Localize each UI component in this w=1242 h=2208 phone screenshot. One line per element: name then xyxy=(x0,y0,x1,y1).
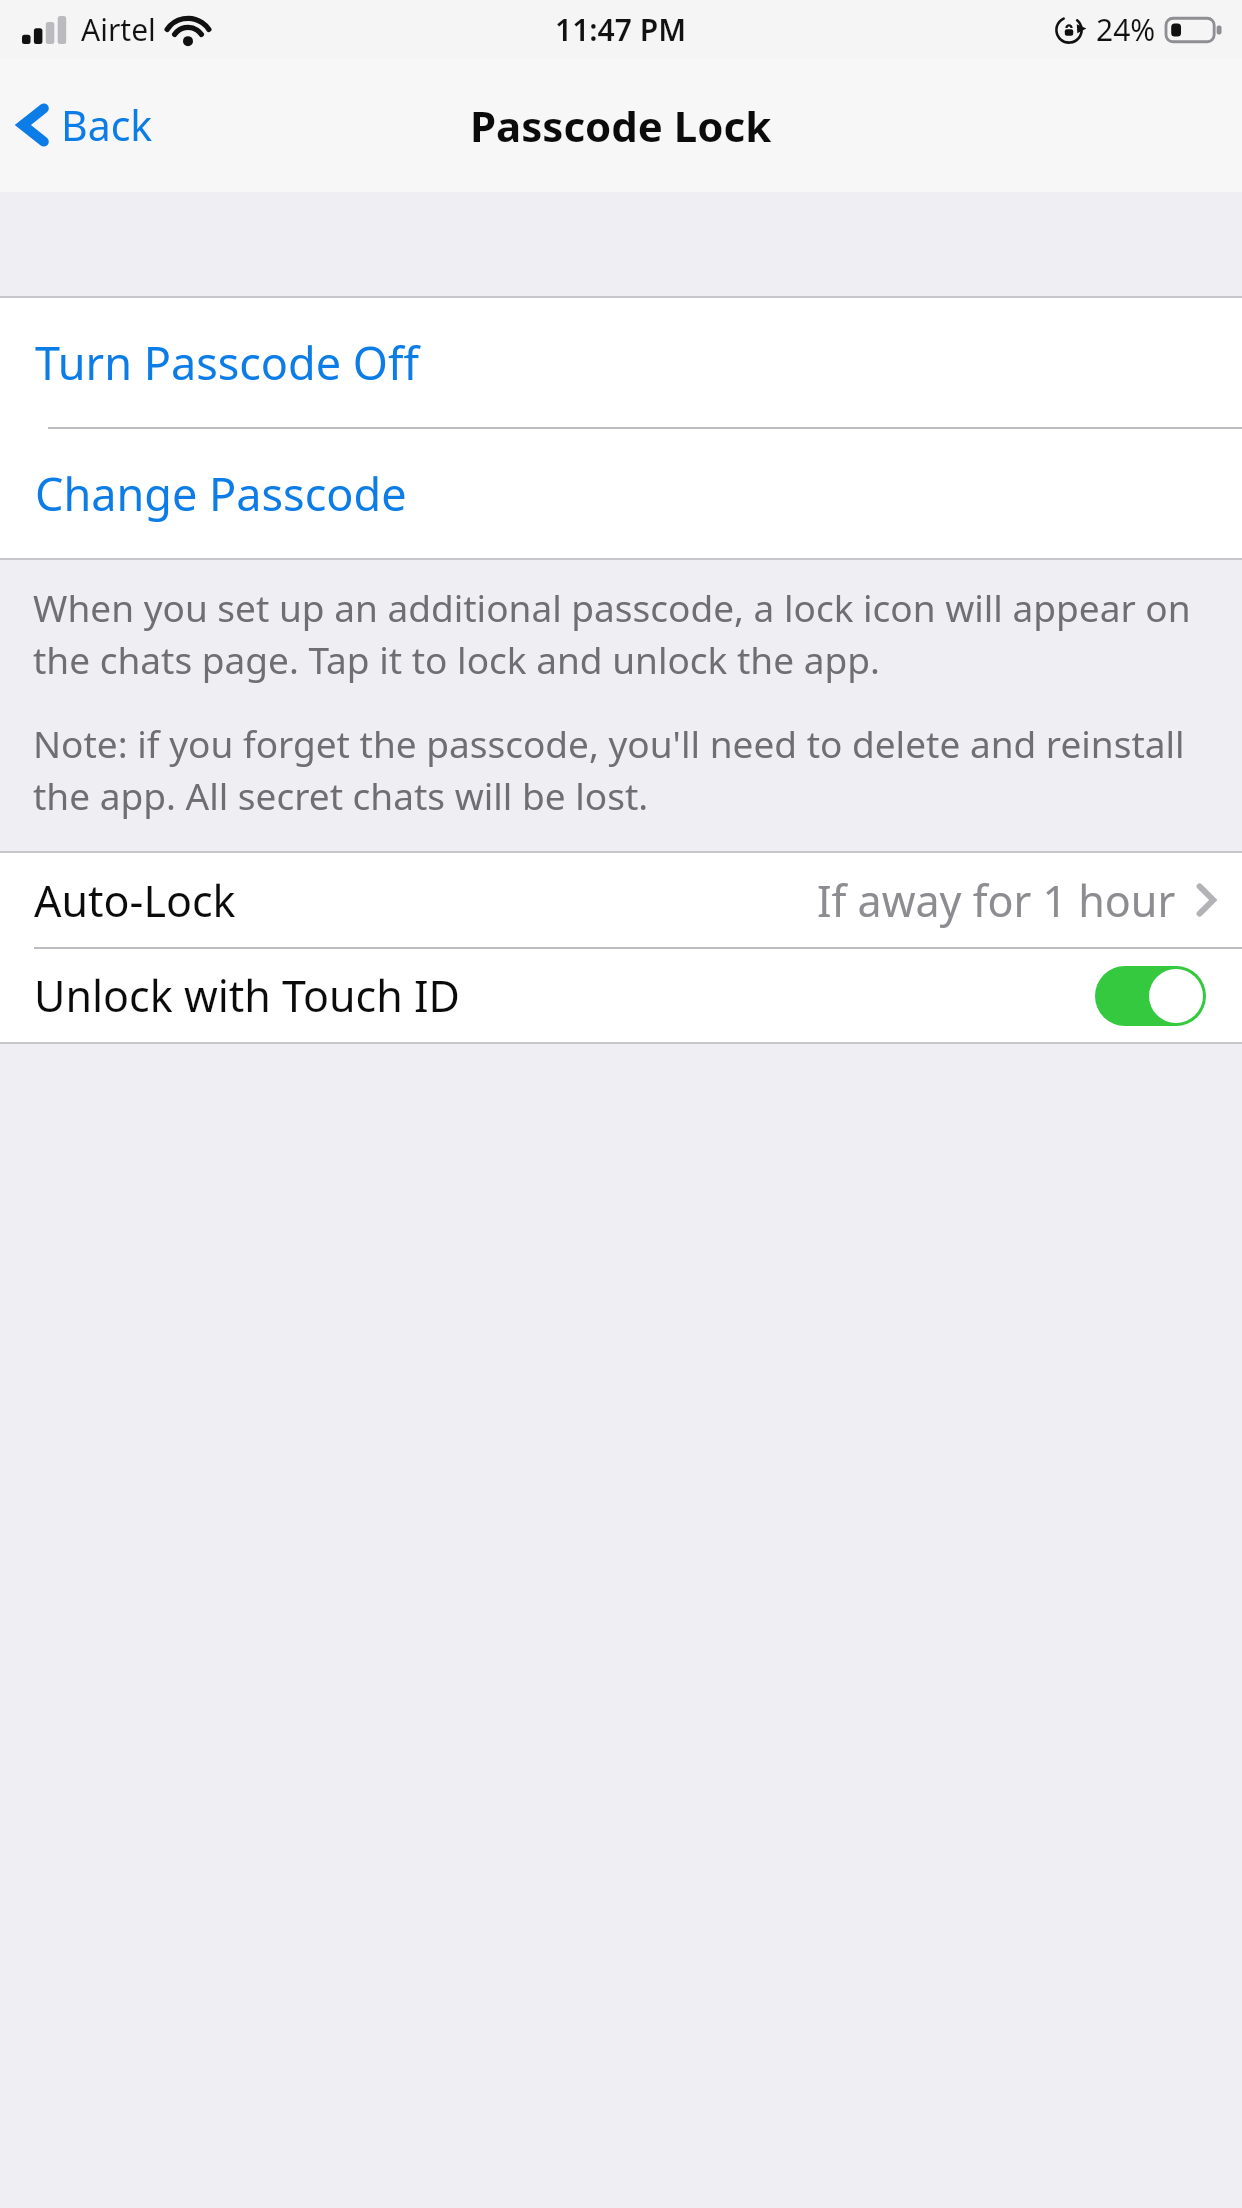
staticText: Passcode Lock xyxy=(470,97,772,154)
staticText: Change Passcode xyxy=(35,463,407,524)
staticText: Back xyxy=(61,97,153,153)
button[interactable]: Change Passcode xyxy=(0,429,1242,558)
staticText: Turn Passcode Off xyxy=(35,332,419,393)
staticText: When you set up an additional passcode, … xyxy=(33,582,1210,685)
button[interactable]: Unlock with Touch ID xyxy=(1095,966,1206,1026)
staticText: Auto-Lock xyxy=(34,871,236,930)
staticText: 24% xyxy=(1096,9,1156,50)
staticText: Airtel xyxy=(81,9,156,50)
button[interactable]: Turn Passcode Off xyxy=(0,298,1242,427)
staticText: If away for 1 hour xyxy=(817,871,1176,930)
staticText: 11:47 PM xyxy=(555,9,687,50)
button[interactable]: Auto-Lock xyxy=(0,853,1242,947)
staticText: Unlock with Touch ID xyxy=(34,966,460,1025)
staticText: Note: if you forget the passcode, you'll… xyxy=(33,718,1210,821)
button[interactable]: Back xyxy=(0,83,173,167)
